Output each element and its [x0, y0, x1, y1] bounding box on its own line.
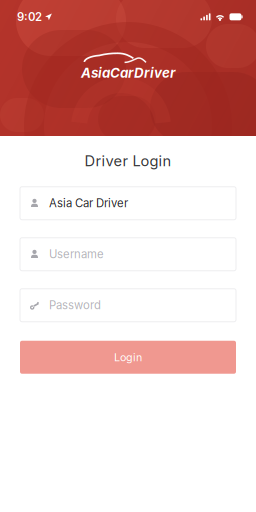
staticText: Asia Car Driver — [49, 196, 128, 210]
button[interactable]: Login — [20, 341, 236, 374]
staticText: Username — [49, 247, 104, 261]
staticText: AsiaCarDriver — [81, 65, 175, 81]
staticText: Password — [49, 298, 101, 312]
staticText: Login — [114, 351, 142, 364]
staticText: Driver Login — [84, 152, 171, 170]
staticText: 9:02 — [17, 10, 42, 24]
